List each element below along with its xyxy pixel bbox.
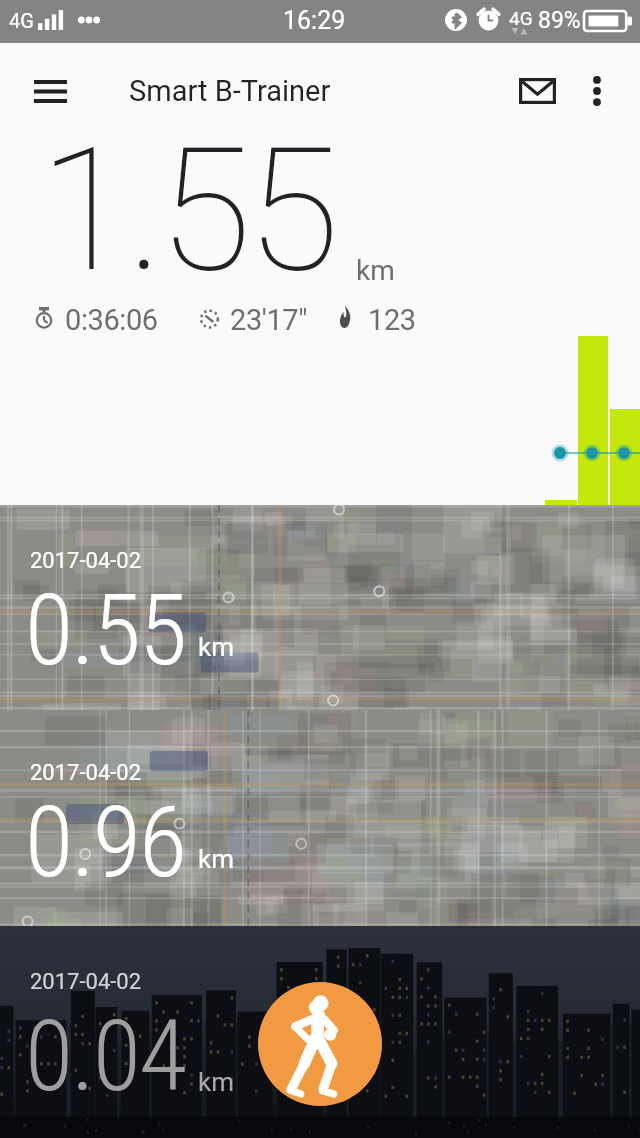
staticText: 89% [538, 7, 581, 34]
staticText: 2017-04-02 [30, 548, 142, 574]
staticText: 0.96 [25, 784, 186, 900]
staticText: 0.04 [25, 998, 186, 1114]
staticText: Smart B-Trainer [129, 74, 331, 108]
button[interactable]: Menu [8, 49, 92, 133]
button[interactable]: Start run [258, 982, 382, 1106]
staticText: 16:29 [283, 6, 346, 35]
staticText: 23'17" [230, 303, 308, 337]
staticText: 4G [509, 7, 533, 29]
staticText: km [356, 254, 395, 287]
staticText: 2017-04-02 [30, 760, 142, 786]
staticText: 4G [9, 9, 34, 32]
button[interactable]: 2017-04-02 [0, 926, 640, 1138]
staticText: 0.55 [25, 572, 186, 688]
button[interactable]: 2017-04-02 [0, 710, 640, 926]
button[interactable]: 2017-04-02 [0, 505, 640, 710]
staticText: km [198, 844, 234, 874]
button[interactable]: Messages [497, 51, 577, 131]
staticText: 123 [368, 303, 416, 337]
staticText: 2017-04-02 [30, 969, 142, 995]
button[interactable]: More options [567, 61, 627, 121]
staticText: 1.55 [39, 111, 335, 310]
staticText: km [198, 632, 234, 662]
staticText: km [198, 1067, 234, 1097]
staticText: 0:36:06 [65, 303, 158, 337]
